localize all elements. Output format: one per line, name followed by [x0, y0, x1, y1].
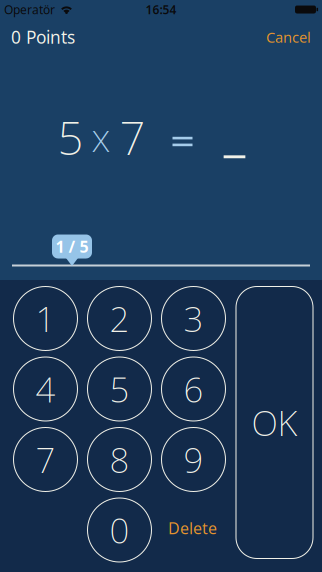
button[interactable]: 2 [87, 286, 151, 350]
staticText: 5 [109, 366, 129, 412]
button[interactable]: 8 [87, 427, 151, 491]
staticText: 7 [119, 107, 145, 168]
staticText: 16:54 [145, 1, 176, 17]
staticText: Operatör [4, 1, 55, 17]
staticText: 5 [57, 107, 83, 168]
staticText: 6 [183, 366, 203, 412]
button[interactable]: 5 [87, 357, 151, 421]
button[interactable]: Cancel [266, 27, 311, 47]
button[interactable]: 4 [13, 357, 77, 421]
button[interactable]: OK [236, 286, 313, 558]
staticText: Delete [168, 517, 217, 539]
staticText: 7 [35, 436, 55, 482]
staticText: x [91, 111, 110, 163]
button[interactable]: 6 [161, 357, 225, 421]
button[interactable]: 0 [87, 498, 151, 562]
staticText: 3 [183, 295, 203, 341]
button[interactable]: 1 [13, 286, 77, 350]
button[interactable]: Delete [168, 517, 217, 539]
button[interactable]: 7 [13, 427, 77, 491]
button[interactable]: 9 [161, 427, 225, 491]
staticText: Cancel [266, 27, 311, 47]
staticText: OK [251, 399, 297, 445]
staticText: 9 [183, 436, 203, 482]
button[interactable]: 3 [161, 286, 225, 350]
staticText: 1 [35, 295, 55, 341]
staticText: 0 Points [11, 25, 75, 48]
staticText: 8 [109, 436, 129, 482]
staticText: 1 / 5 [55, 236, 88, 257]
staticText: 4 [35, 366, 55, 412]
staticText: 2 [109, 295, 129, 341]
staticText: 0 [109, 507, 129, 553]
